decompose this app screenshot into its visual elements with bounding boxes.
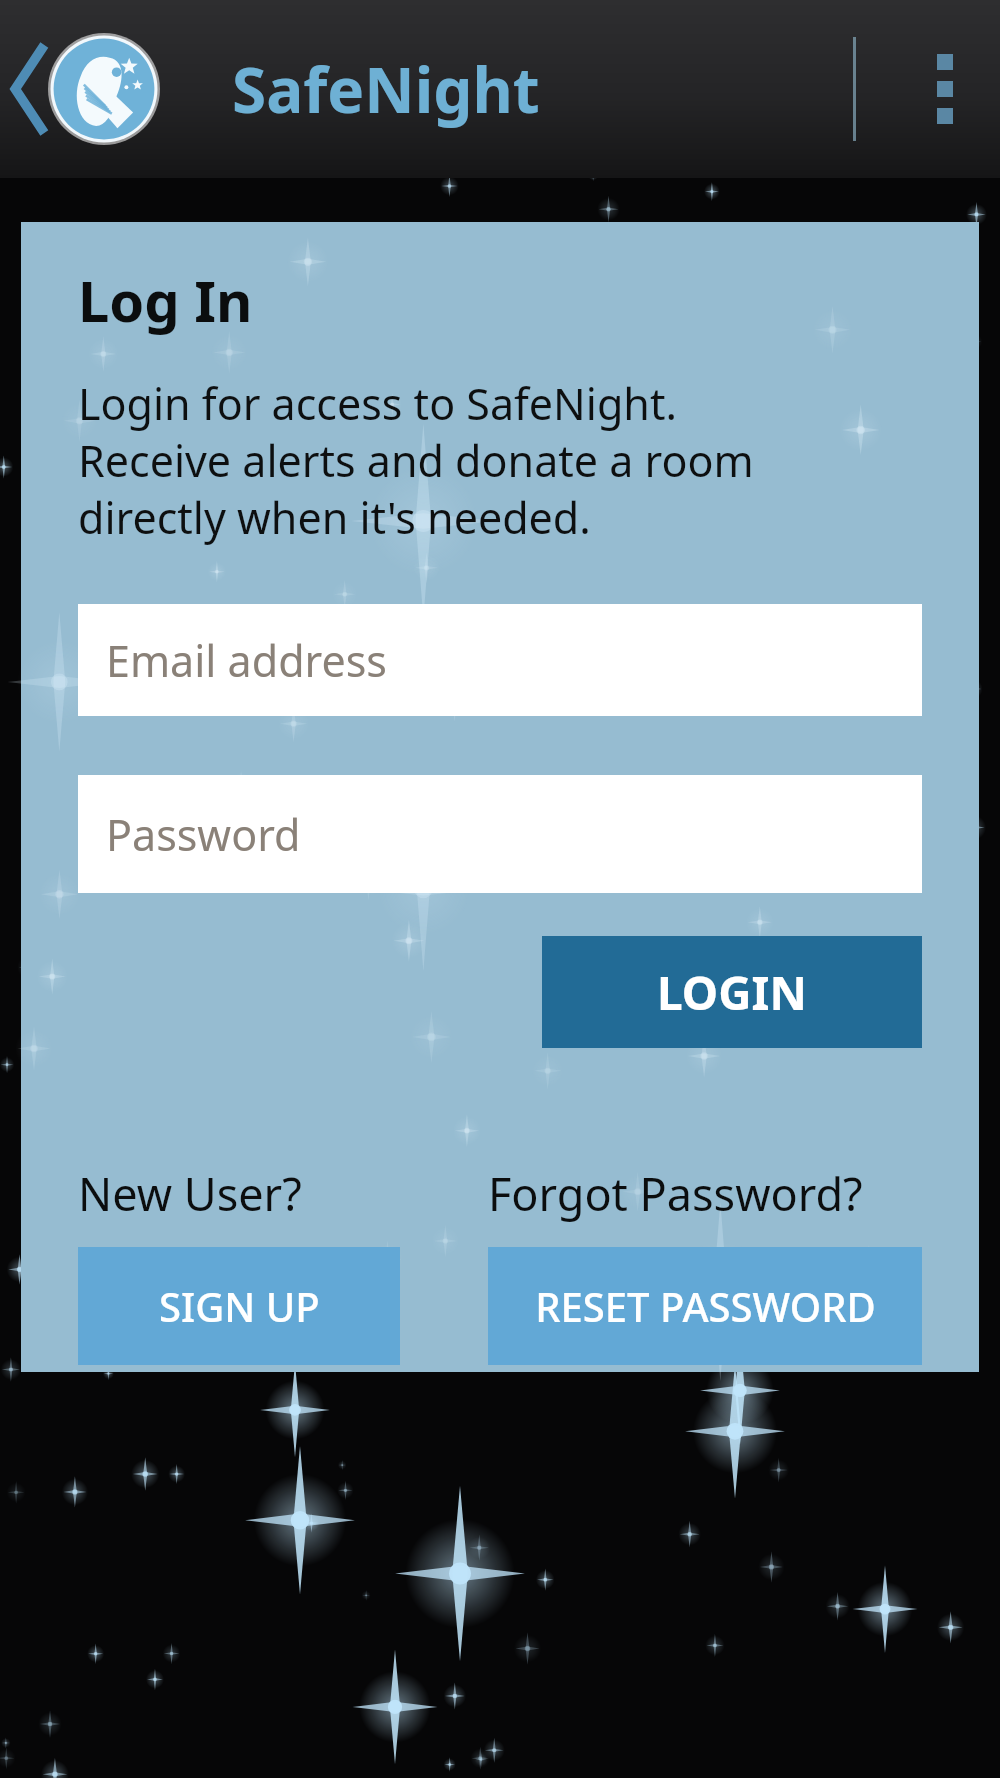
staticText: Password <box>106 805 301 864</box>
button[interactable]: LOGIN <box>542 936 922 1048</box>
staticText: Email address <box>106 631 387 690</box>
staticText: SafeNight <box>232 47 540 131</box>
staticText: Login for access to SafeNight. Receive a… <box>78 374 754 546</box>
staticText: LOGIN <box>657 961 807 1024</box>
staticText: SIGN UP <box>159 1279 320 1333</box>
button[interactable]: SIGN UP <box>78 1247 400 1365</box>
button[interactable]: Password <box>78 775 922 893</box>
staticText: Forgot Password? <box>488 1163 863 1224</box>
button[interactable]: RESET PASSWORD <box>488 1247 922 1365</box>
button[interactable]: Back <box>4 34 60 144</box>
staticText: New User? <box>78 1163 302 1224</box>
button[interactable]: Email address <box>78 604 922 716</box>
button[interactable]: More options <box>890 0 1000 178</box>
staticText: Log In <box>78 262 253 338</box>
staticText: RESET PASSWORD <box>535 1279 876 1333</box>
